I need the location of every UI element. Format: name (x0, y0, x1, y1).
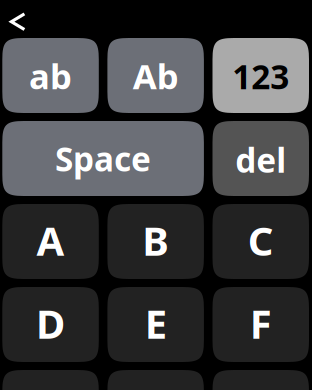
button[interactable]: G (2, 370, 99, 390)
staticText: C (248, 214, 274, 267)
button[interactable]: B (107, 204, 204, 279)
button[interactable]: del (212, 121, 309, 196)
button[interactable]: ab (2, 38, 99, 113)
button[interactable]: Back (8, 12, 32, 32)
button[interactable]: Space (2, 121, 204, 196)
button[interactable]: 123 (212, 38, 309, 113)
staticText: Space (55, 136, 151, 181)
staticText: D (36, 297, 65, 350)
staticText: del (235, 138, 286, 182)
staticText: ab (29, 53, 72, 99)
staticText: E (145, 297, 167, 350)
staticText: F (250, 297, 272, 350)
button[interactable]: E (107, 287, 204, 362)
staticText: 123 (232, 54, 289, 99)
button[interactable]: I (212, 370, 309, 390)
staticText: A (36, 214, 64, 267)
staticText: B (142, 214, 169, 267)
button[interactable]: Ab (107, 38, 204, 113)
staticText: Ab (133, 53, 179, 99)
button[interactable]: A (2, 204, 99, 279)
button[interactable]: H (107, 370, 204, 390)
button[interactable]: C (212, 204, 309, 279)
button[interactable]: F (212, 287, 309, 362)
button[interactable]: D (2, 287, 99, 362)
